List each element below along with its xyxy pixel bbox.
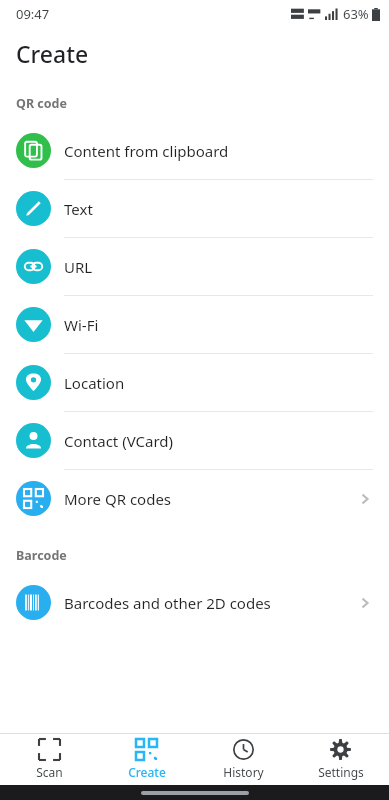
button[interactable]: Settings	[292, 734, 389, 785]
button[interactable]: Wi-Fi	[0, 296, 389, 353]
button[interactable]: Create	[98, 734, 195, 785]
button[interactable]: URL	[0, 238, 389, 295]
staticText: Create	[16, 38, 89, 69]
staticText: Barcode	[16, 547, 67, 564]
button[interactable]: Barcodes and other 2D codes	[0, 574, 389, 631]
staticText: Content from clipboard	[64, 141, 229, 161]
staticText: Contact (VCard)	[64, 431, 174, 451]
button[interactable]: More QR codes	[0, 470, 389, 527]
staticText: QR code	[16, 95, 67, 112]
staticText: History	[223, 764, 264, 780]
staticText: Create	[128, 764, 166, 780]
staticText: URL	[64, 257, 93, 277]
button[interactable]: History	[195, 734, 292, 785]
button[interactable]: Content from clipboard	[0, 122, 389, 179]
staticText: Scan	[36, 764, 63, 780]
staticText: 63%	[343, 5, 369, 23]
staticText: Wi-Fi	[64, 315, 99, 335]
staticText: More QR codes	[64, 489, 172, 509]
staticText: Location	[64, 373, 125, 393]
button[interactable]: Scan	[0, 734, 98, 785]
staticText: Settings	[318, 764, 364, 780]
staticText: 09:47	[16, 5, 50, 23]
button[interactable]: Text	[0, 180, 389, 237]
button[interactable]: Location	[0, 354, 389, 411]
staticText: Text	[64, 199, 93, 219]
button[interactable]: Contact (VCard)	[0, 412, 389, 469]
staticText: Barcodes and other 2D codes	[64, 593, 271, 613]
